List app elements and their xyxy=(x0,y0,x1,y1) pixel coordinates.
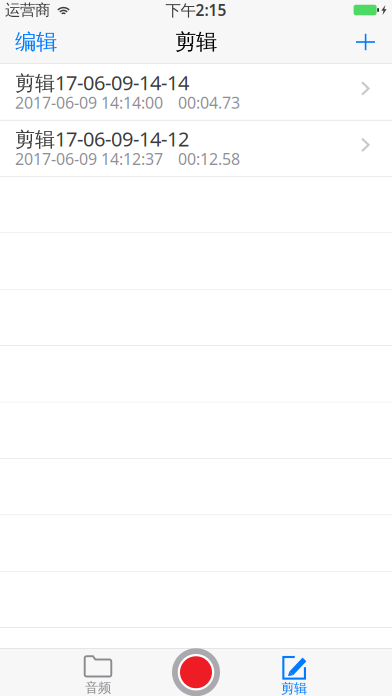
staticText: 2017-06-09 14:14:00 xyxy=(15,92,163,113)
staticText: 剪辑17-06-09-14-12 xyxy=(15,126,189,152)
button[interactable]: Add recording xyxy=(339,20,392,64)
button[interactable]: 编辑 xyxy=(0,20,72,64)
staticText: 剪辑17-06-09-14-14 xyxy=(15,69,189,96)
staticText: 剪辑 xyxy=(175,29,217,55)
staticText: 2017-06-09 14:12:37 xyxy=(15,148,163,169)
staticText: 编辑 xyxy=(15,29,57,55)
button[interactable]: Record xyxy=(147,648,245,696)
button[interactable]: 剪辑 xyxy=(245,648,343,696)
button[interactable]: 剪辑17-06-09-14-12 xyxy=(0,120,392,177)
button[interactable]: 剪辑17-06-09-14-14 xyxy=(0,64,392,120)
staticText: 下午2:15 xyxy=(165,0,226,21)
staticText: 00:04.73 xyxy=(178,92,240,113)
staticText: 音频 xyxy=(85,679,111,696)
staticText: 剪辑 xyxy=(281,680,307,696)
staticText: 00:12.58 xyxy=(178,148,240,169)
button[interactable]: 音频 xyxy=(49,648,147,696)
staticText: 运营商 xyxy=(5,0,50,20)
